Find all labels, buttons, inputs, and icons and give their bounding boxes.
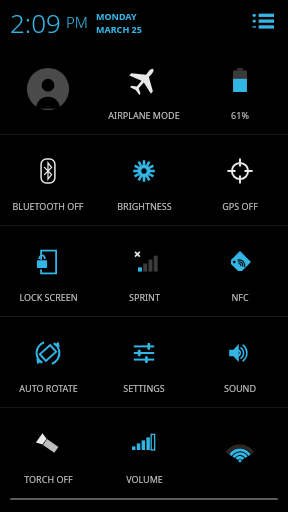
button[interactable]: User profile <box>0 44 96 134</box>
staticText: MARCH 25 <box>96 23 142 35</box>
staticText: MONDAY <box>96 10 137 22</box>
button[interactable]: LOCK SCREEN <box>0 226 96 316</box>
staticText: GPS OFF <box>222 200 258 212</box>
button[interactable]: TORCH OFF <box>0 408 96 498</box>
staticText: 61% <box>231 109 249 121</box>
staticText: NFC <box>231 291 249 303</box>
button[interactable]: SPRINT <box>96 226 192 316</box>
staticText: TORCH OFF <box>24 473 73 485</box>
button[interactable]: SOUND <box>192 317 288 407</box>
button[interactable]: NFC <box>192 226 288 316</box>
staticText: BLUETOOTH OFF <box>12 200 84 212</box>
staticText: AIRPLANE MODE <box>108 109 180 121</box>
staticText: SETTINGS <box>123 382 165 394</box>
staticText: BRIGHTNESS <box>117 200 172 212</box>
staticText: PM <box>66 12 88 32</box>
button[interactable]: VOLUME <box>96 408 192 498</box>
staticText: AUTO ROTATE <box>19 382 78 394</box>
button[interactable]: BRIGHTNESS <box>96 135 192 225</box>
button[interactable]: AIRPLANE MODE <box>96 44 192 134</box>
button[interactable]: Wi-Fi <box>192 408 288 498</box>
staticText: SOUND <box>224 382 256 394</box>
button[interactable]: AUTO ROTATE <box>0 317 96 407</box>
staticText: SPRINT <box>129 291 160 303</box>
button[interactable]: BLUETOOTH OFF <box>0 135 96 225</box>
staticText: VOLUME <box>126 473 163 485</box>
button[interactable]: SETTINGS <box>96 317 192 407</box>
button[interactable]: GPS OFF <box>192 135 288 225</box>
button[interactable]: 61% <box>192 44 288 134</box>
staticText: LOCK SCREEN <box>19 291 78 303</box>
staticText: 2:09 <box>10 5 61 40</box>
button[interactable]: Open settings list <box>246 5 280 39</box>
